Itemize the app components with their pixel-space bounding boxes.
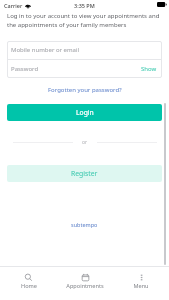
staticText: or xyxy=(82,139,88,146)
button[interactable]: Password xyxy=(7,60,162,78)
staticText: Mobile number or email xyxy=(11,46,80,54)
staticText: Forgotten your password? xyxy=(48,86,122,94)
button[interactable]: subtempo xyxy=(0,219,169,230)
staticText: Show xyxy=(141,65,157,73)
button[interactable]: Menu xyxy=(113,267,169,300)
staticText: the appointments of your family members xyxy=(7,21,127,29)
button[interactable]: Login xyxy=(7,104,162,121)
button[interactable]: Appointments xyxy=(57,267,113,300)
staticText: Menu xyxy=(133,282,149,290)
staticText: 3:35 PM xyxy=(74,2,95,9)
staticText: Password xyxy=(11,65,39,73)
staticText: Carrier xyxy=(4,2,23,9)
staticText: Home xyxy=(21,282,37,290)
staticText: Appointments xyxy=(66,282,104,290)
button[interactable]: Mobile number or email xyxy=(7,41,162,59)
staticText: Login xyxy=(76,108,94,117)
button[interactable]: Forgotten your password? xyxy=(0,84,169,96)
staticText: subtempo xyxy=(71,221,98,228)
staticText: Register xyxy=(71,169,98,178)
button[interactable]: Register xyxy=(7,165,162,182)
button[interactable]: Home xyxy=(0,267,57,300)
staticText: Log in to your account to view your appo… xyxy=(7,12,160,20)
